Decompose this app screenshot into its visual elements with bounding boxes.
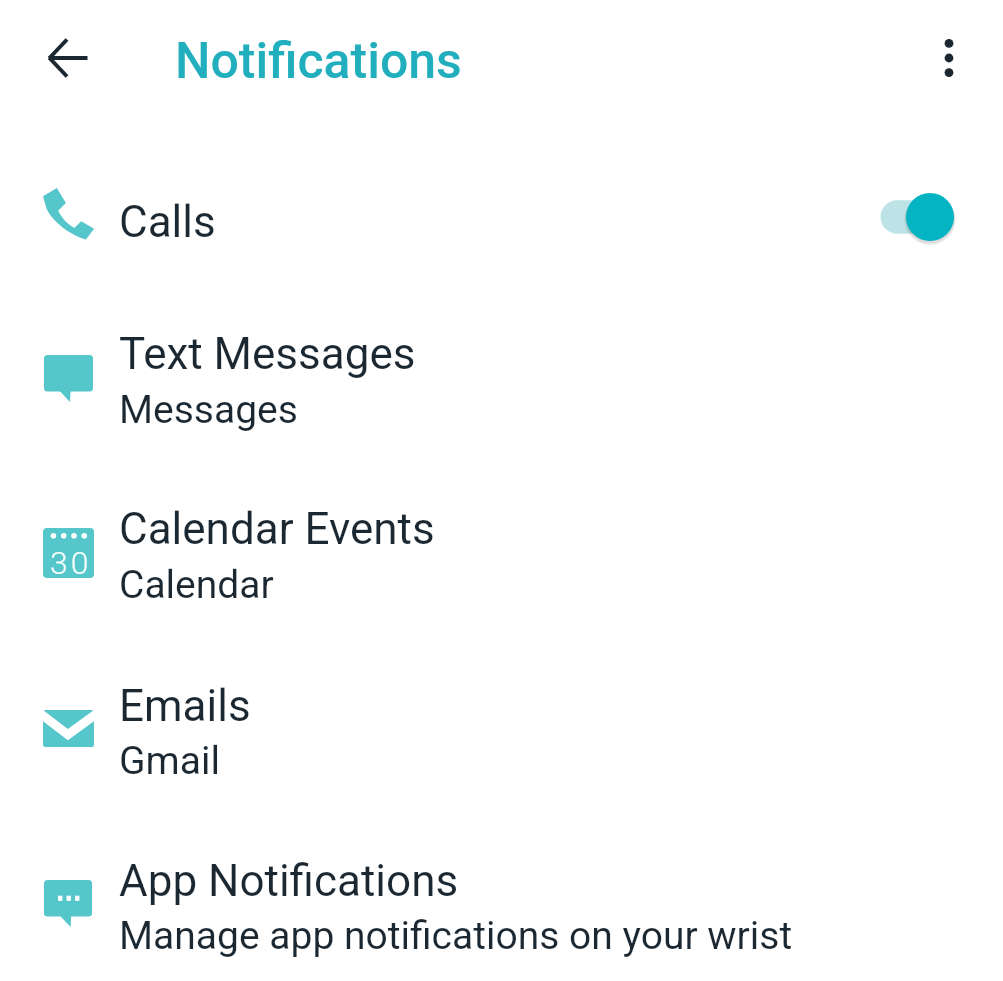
staticText: Text Messages [119,328,416,380]
staticText: Calendar Events [119,503,435,555]
button[interactable]: More options [925,34,973,82]
staticText: Messages [119,387,298,433]
staticText: Notifications [175,32,462,91]
button[interactable]: Calls notifications toggle [866,173,976,261]
button[interactable]: Emails [0,644,1003,820]
staticText: Manage app notifications on your wrist [119,913,793,959]
staticText: Emails [119,680,251,732]
button[interactable]: Back [39,29,97,87]
button[interactable]: App Notifications [0,820,1003,981]
staticText: App Notifications [119,855,459,907]
button[interactable]: 30 [0,468,1003,644]
button[interactable]: Text Messages [0,293,1003,468]
staticText: 30 [50,544,92,582]
button[interactable]: Calls [0,160,1003,293]
staticText: Gmail [119,738,220,784]
staticText: Calls [119,196,216,248]
staticText: Calendar [119,562,274,608]
